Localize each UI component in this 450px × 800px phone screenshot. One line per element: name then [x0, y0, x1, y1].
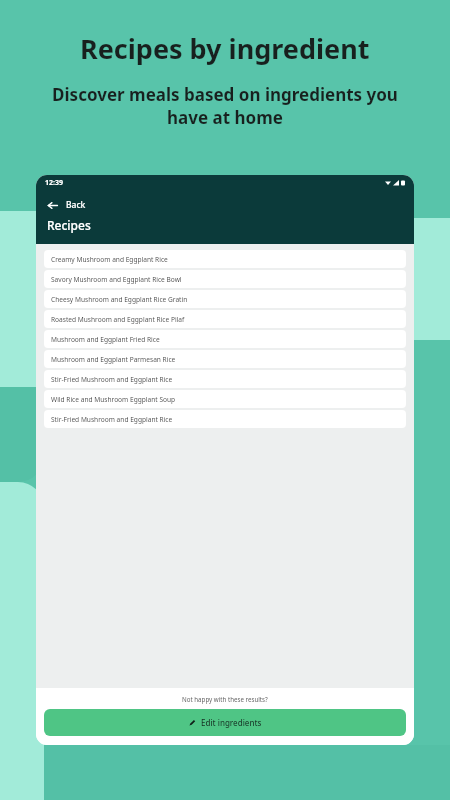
button[interactable]: Wild Rice and Mushroom Eggplant Soup — [44, 390, 406, 408]
staticText: Savory Mushroom and Eggplant Rice Bowl — [51, 275, 182, 284]
other: Back — [47, 200, 58, 211]
staticText: Back — [66, 199, 86, 211]
button[interactable]: Stir-Fried Mushroom and Eggplant Rice — [44, 370, 406, 388]
button[interactable]: Savory Mushroom and Eggplant Rice Bowl — [44, 270, 406, 288]
staticText: Not happy with these results? — [182, 695, 268, 703]
button[interactable]: Creamy Mushroom and Eggplant Rice — [44, 250, 406, 268]
staticText: Stir-Fried Mushroom and Eggplant Rice — [51, 415, 173, 424]
staticText: Recipes — [47, 217, 91, 233]
staticText: Roasted Mushroom and Eggplant Rice Pilaf — [51, 315, 185, 324]
staticText: Recipes by ingredient — [80, 30, 370, 67]
staticText: Discover meals based on ingredients you … — [30, 83, 420, 129]
staticText: Mushroom and Eggplant Parmesan Rice — [51, 355, 176, 364]
staticText: Stir-Fried Mushroom and Eggplant Rice — [51, 375, 173, 384]
staticText: Creamy Mushroom and Eggplant Rice — [51, 255, 168, 264]
button[interactable]: Cheesy Mushroom and Eggplant Rice Gratin — [44, 290, 406, 308]
button[interactable]: Roasted Mushroom and Eggplant Rice Pilaf — [44, 310, 406, 328]
staticText: Mushroom and Eggplant Fried Rice — [51, 335, 160, 344]
staticText: Wild Rice and Mushroom Eggplant Soup — [51, 395, 176, 404]
button[interactable]: Edit ingredients — [44, 709, 406, 736]
button[interactable]: Stir-Fried Mushroom and Eggplant Rice — [44, 410, 406, 428]
staticText: Cheesy Mushroom and Eggplant Rice Gratin — [51, 295, 188, 304]
button[interactable]: Back — [36, 195, 414, 215]
staticText: Edit ingredients — [201, 717, 262, 728]
button[interactable]: Mushroom and Eggplant Parmesan Rice — [44, 350, 406, 368]
button[interactable]: Mushroom and Eggplant Fried Rice — [44, 330, 406, 348]
staticText: 12:39 — [45, 178, 63, 188]
